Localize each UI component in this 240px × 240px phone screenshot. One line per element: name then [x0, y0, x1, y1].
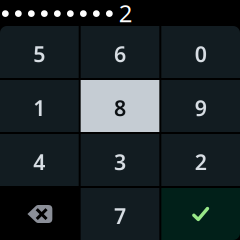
staticText: 0: [195, 40, 207, 68]
button[interactable]: 2: [161, 134, 240, 186]
button[interactable]: Confirm: [161, 188, 240, 240]
staticText: 2: [195, 148, 207, 176]
button[interactable]: 0: [161, 26, 240, 78]
button[interactable]: Delete: [0, 188, 79, 240]
staticText: 7: [114, 202, 126, 230]
button[interactable]: 1: [0, 80, 79, 132]
staticText: 1: [33, 94, 45, 122]
staticText: 8: [114, 94, 126, 122]
staticText: 6: [114, 40, 126, 68]
button[interactable]: 9: [161, 80, 240, 132]
button[interactable]: 8: [81, 80, 159, 132]
staticText: 4: [33, 148, 45, 176]
button[interactable]: 3: [81, 134, 159, 186]
button[interactable]: 4: [0, 134, 79, 186]
staticText: 9: [195, 94, 207, 122]
button[interactable]: 6: [81, 26, 159, 78]
button[interactable]: 7: [81, 188, 159, 240]
staticText: 2: [119, 0, 133, 29]
staticText: 5: [33, 40, 45, 68]
staticText: 3: [114, 148, 126, 176]
button[interactable]: 5: [0, 26, 79, 78]
